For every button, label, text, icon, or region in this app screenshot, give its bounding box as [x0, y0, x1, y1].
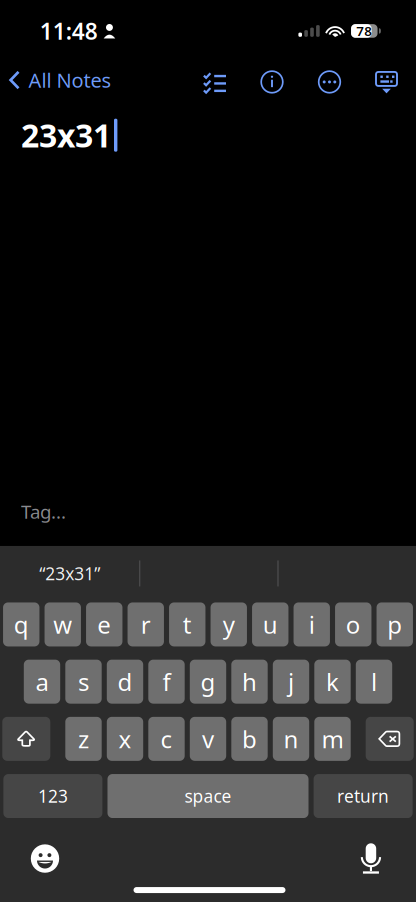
button[interactable]: l [356, 660, 392, 704]
button[interactable]: Emoji [22, 836, 68, 882]
button[interactable]: x [107, 717, 143, 761]
button[interactable]: Hide keyboard [364, 61, 408, 105]
button[interactable]: z [65, 717, 102, 761]
button[interactable]: j [273, 660, 309, 704]
button[interactable]: More [307, 60, 351, 104]
button[interactable]: g [190, 660, 226, 704]
staticText: 123 [38, 784, 68, 807]
staticText: l [371, 666, 377, 698]
staticText: v [202, 723, 214, 755]
staticText: i [309, 608, 315, 640]
staticText: o [346, 608, 361, 640]
button[interactable]: All Notes [0, 58, 121, 102]
button[interactable]: t [169, 602, 205, 646]
staticText: d [117, 666, 132, 698]
button[interactable]: “23x31” [0, 549, 139, 597]
staticText: return [337, 784, 389, 807]
button[interactable]: Shift [2, 717, 50, 761]
button[interactable]: n [273, 717, 309, 761]
staticText: space [184, 784, 231, 807]
staticText: w [53, 608, 72, 640]
staticText: z [78, 723, 89, 755]
staticText: h [242, 666, 257, 698]
staticText: n [283, 723, 298, 755]
button[interactable]: a [24, 660, 60, 704]
staticText: f [162, 666, 170, 698]
staticText: t [183, 608, 192, 640]
staticText: y [223, 608, 235, 640]
button[interactable]: Dictation [348, 836, 394, 882]
staticText: c [160, 723, 172, 755]
button[interactable]: i [294, 602, 330, 646]
button[interactable]: b [231, 717, 268, 761]
staticText: m [321, 723, 343, 755]
button[interactable]: f [148, 660, 185, 704]
staticText: All Notes [28, 67, 111, 93]
staticText: j [288, 666, 294, 698]
staticText: 78 [356, 22, 372, 40]
button[interactable]: space [107, 774, 308, 818]
staticText: x [118, 723, 131, 755]
staticText: g [200, 666, 215, 698]
staticText: s [78, 666, 89, 698]
button[interactable]: d [107, 660, 143, 704]
button[interactable]: y [211, 602, 247, 646]
staticText: a [35, 666, 48, 698]
staticText: q [14, 608, 29, 640]
staticText: e [97, 608, 111, 640]
staticText: r [141, 608, 151, 640]
button[interactable]: p [377, 602, 413, 646]
button[interactable]: v [190, 717, 226, 761]
button[interactable]: q [3, 602, 39, 646]
staticText: 23x31 [21, 114, 111, 156]
button[interactable]: 123 [3, 774, 102, 818]
button[interactable]: m [314, 717, 351, 761]
staticText: Tag... [21, 499, 66, 524]
button[interactable]: r [128, 602, 164, 646]
button[interactable]: return [314, 774, 413, 818]
button[interactable]: u [252, 602, 288, 646]
button[interactable]: k [314, 660, 351, 704]
staticText: “23x31” [39, 562, 100, 585]
staticText: p [387, 608, 402, 640]
staticText: 11:48 [40, 16, 98, 46]
button[interactable]: Delete [366, 717, 414, 761]
button[interactable]: c [148, 717, 185, 761]
staticText: u [263, 608, 278, 640]
button[interactable]: o [335, 602, 371, 646]
staticText: k [326, 666, 339, 698]
button[interactable]: s [65, 660, 102, 704]
button[interactable]: w [45, 602, 81, 646]
button[interactable]: h [231, 660, 268, 704]
button[interactable]: Checklist [193, 59, 237, 103]
button[interactable]: e [86, 602, 122, 646]
button[interactable]: Info [250, 60, 294, 104]
staticText: b [242, 723, 257, 755]
